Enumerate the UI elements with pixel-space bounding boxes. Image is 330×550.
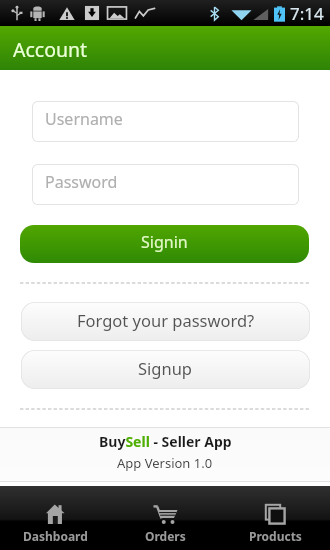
other: Dashboard: [46, 504, 65, 524]
button[interactable]: Password: [32, 164, 299, 205]
staticText: Orders: [145, 528, 186, 544]
staticText: Products: [249, 528, 302, 544]
staticText: Account: [13, 36, 88, 63]
staticText: Forgot your password?: [77, 309, 255, 331]
other: Orders: [153, 504, 178, 524]
staticText: App Version 1.0: [117, 454, 213, 472]
button[interactable]: Orders: [110, 486, 220, 550]
staticText: Signin: [141, 231, 188, 253]
button[interactable]: Forgot your password?: [21, 302, 310, 341]
staticText: BuySell - Seller App: [99, 432, 232, 450]
staticText: Password: [45, 171, 118, 193]
staticText: Username: [45, 108, 123, 130]
button[interactable]: Signin: [20, 225, 309, 263]
staticText: Dashboard: [23, 528, 88, 544]
button[interactable]: Signup: [21, 350, 310, 389]
button[interactable]: Username: [32, 101, 299, 142]
button[interactable]: Products: [220, 486, 330, 550]
button[interactable]: Dashboard: [0, 486, 110, 550]
staticText: 7:14: [290, 2, 324, 25]
staticText: Signup: [138, 357, 193, 379]
other: Products: [265, 504, 285, 524]
